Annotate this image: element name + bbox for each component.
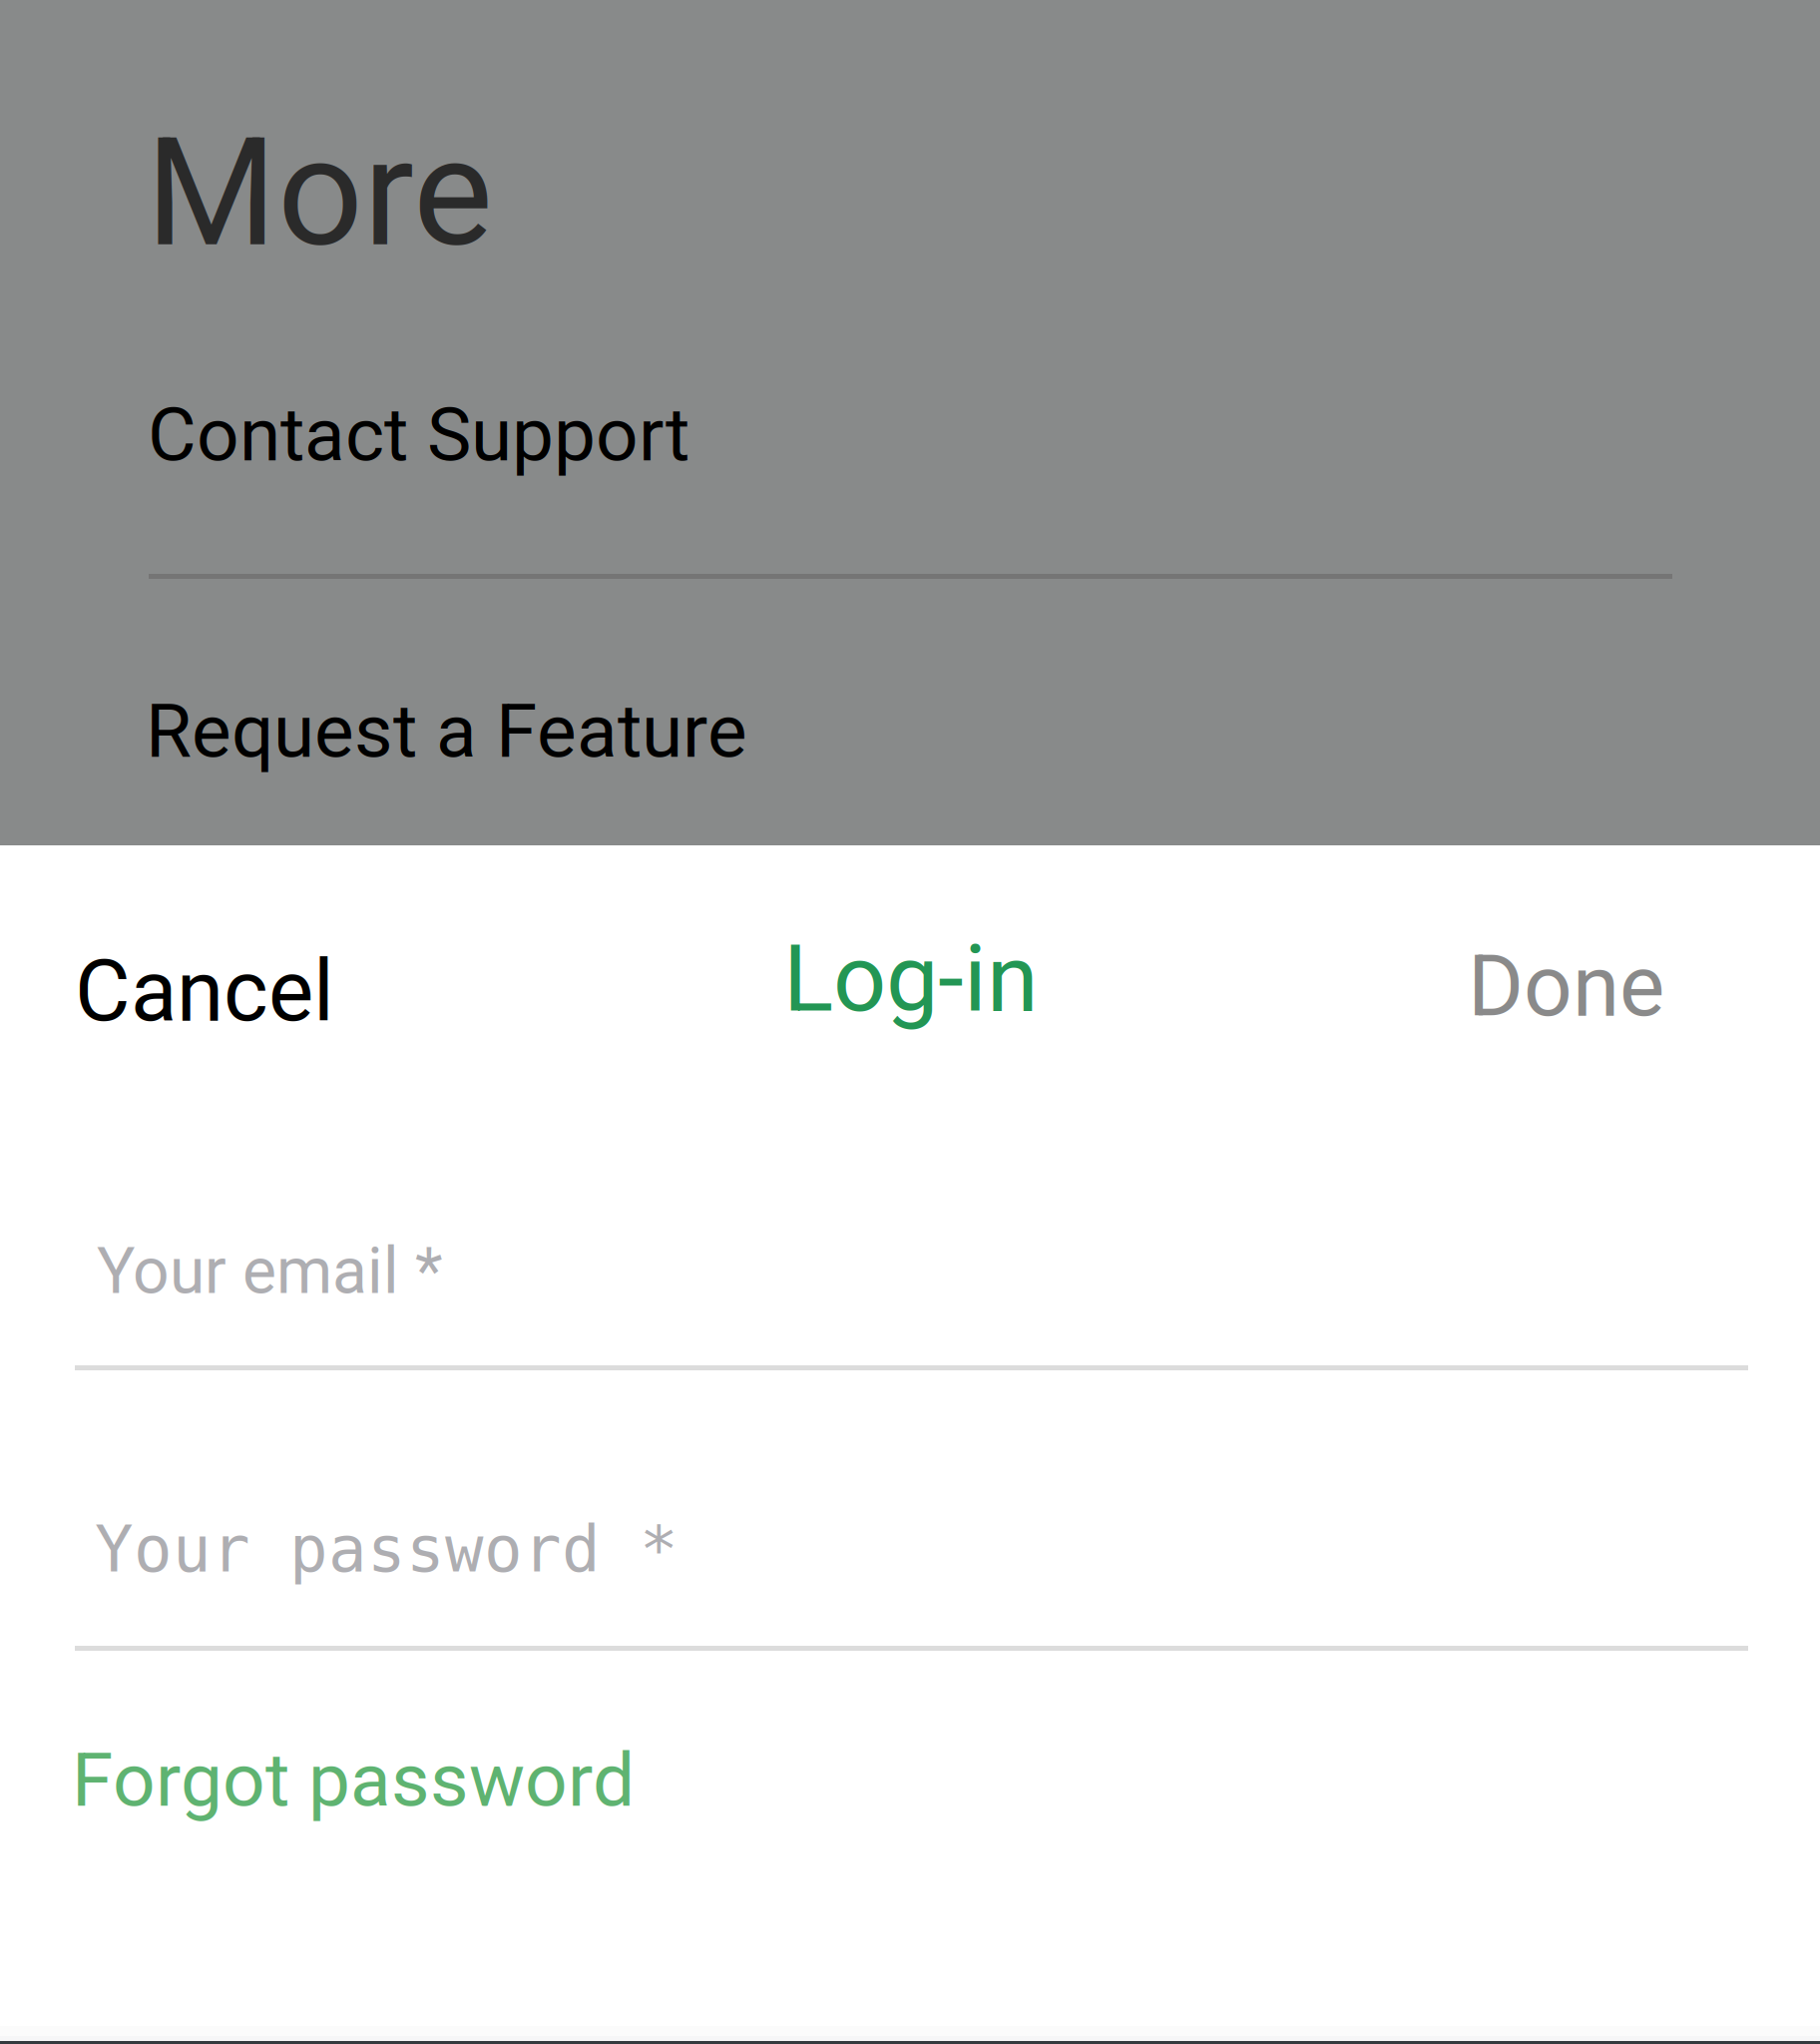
button[interactable]: Forgot password [65,1710,644,1839]
button[interactable]: Cancel [55,898,342,1048]
staticText: Your password * [95,1512,679,1586]
button[interactable]: Your email * [75,1183,1748,1372]
button[interactable]: Done [1442,898,1701,1048]
staticText: Log-in [783,924,1039,1033]
staticText: Forgot password [72,1737,635,1824]
button[interactable]: Your password * [75,1462,1748,1652]
staticText: More [146,105,493,281]
staticText: Cancel [75,941,334,1041]
staticText: Contact Support [148,391,689,479]
staticText: Request a Feature [146,688,747,775]
staticText: Done [1468,936,1664,1036]
staticText: Your email * [97,1234,443,1308]
button[interactable]: Contact Support [149,293,1671,465]
button[interactable]: Request a Feature [149,580,1671,752]
